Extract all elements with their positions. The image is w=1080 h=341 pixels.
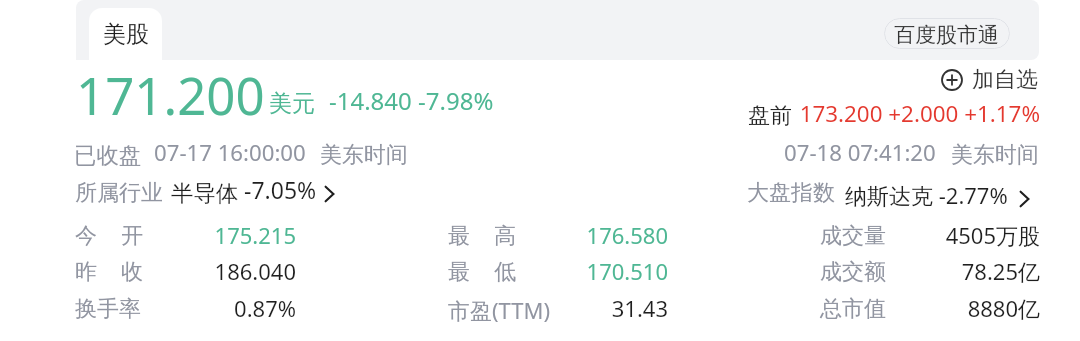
button[interactable]: 所属行业 xyxy=(74,176,337,208)
staticText: 175.215 xyxy=(75,220,296,250)
staticText: 昨 xyxy=(75,258,97,286)
other: 加自选 xyxy=(941,69,963,91)
staticText: -14.840 -7.98% xyxy=(329,84,494,117)
staticText: 171.200 xyxy=(76,60,265,129)
staticText: 4505万股 xyxy=(820,220,1040,250)
button[interactable]: 纳斯达克 -2.77% xyxy=(843,176,1035,208)
staticText: 市盈(TTM) xyxy=(448,295,551,325)
staticText: 换手率 xyxy=(75,295,141,323)
staticText: 大盘指数 xyxy=(747,179,835,207)
staticText: 美东时间 xyxy=(951,141,1039,169)
staticText: 8880亿 xyxy=(820,293,1040,323)
staticText: 美股 xyxy=(103,20,149,49)
staticText: 78.25亿 xyxy=(820,256,1040,286)
staticText: 成交量 xyxy=(820,222,886,250)
staticText: 今 xyxy=(75,222,97,250)
staticText: 总市值 xyxy=(820,295,886,323)
staticText: 美东时间 xyxy=(320,141,408,169)
staticText: 高 xyxy=(494,222,516,250)
staticText: 纳斯达克 -2.77% xyxy=(845,180,1008,210)
staticText: 0.87% xyxy=(75,293,296,323)
staticText: 盘前 xyxy=(748,102,792,130)
staticText: 31.43 xyxy=(448,293,668,323)
staticText: 最 xyxy=(448,258,470,286)
staticText: 半导体 xyxy=(171,179,239,207)
staticText: 173.200 +2.000 +1.17% xyxy=(780,98,1040,129)
button[interactable]: 美股 xyxy=(89,8,162,60)
button[interactable]: 加自选 xyxy=(939,66,1041,96)
staticText: 加自选 xyxy=(972,66,1038,94)
staticText: 176.580 xyxy=(448,220,668,250)
staticText: 百度股市通 xyxy=(894,22,999,48)
staticText: 收 xyxy=(121,258,143,286)
staticText: 186.040 xyxy=(75,256,296,286)
staticText: 所属行业 xyxy=(75,179,163,207)
staticText: -7.05% xyxy=(244,174,317,205)
button[interactable]: 百度股市通 xyxy=(884,18,1010,49)
staticText: 成交额 xyxy=(820,258,886,286)
staticText: 美元 xyxy=(269,89,315,118)
staticText: 07-18 07:41:20 xyxy=(784,137,936,167)
staticText: 最 xyxy=(448,222,470,250)
staticText: 已收盘 xyxy=(74,141,142,169)
staticText: 低 xyxy=(494,258,516,286)
staticText: 07-17 16:00:00 xyxy=(154,137,306,167)
staticText: 170.510 xyxy=(448,256,668,286)
staticText: 开 xyxy=(121,222,143,250)
